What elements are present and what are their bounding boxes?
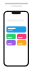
button[interactable]: Category: [6, 34, 16, 39]
button[interactable]: Category: [6, 40, 16, 45]
button[interactable]: [7, 19, 24, 21]
button[interactable]: Category: [17, 40, 26, 45]
button[interactable]: [6, 26, 26, 32]
button[interactable]: Category: [17, 34, 26, 39]
